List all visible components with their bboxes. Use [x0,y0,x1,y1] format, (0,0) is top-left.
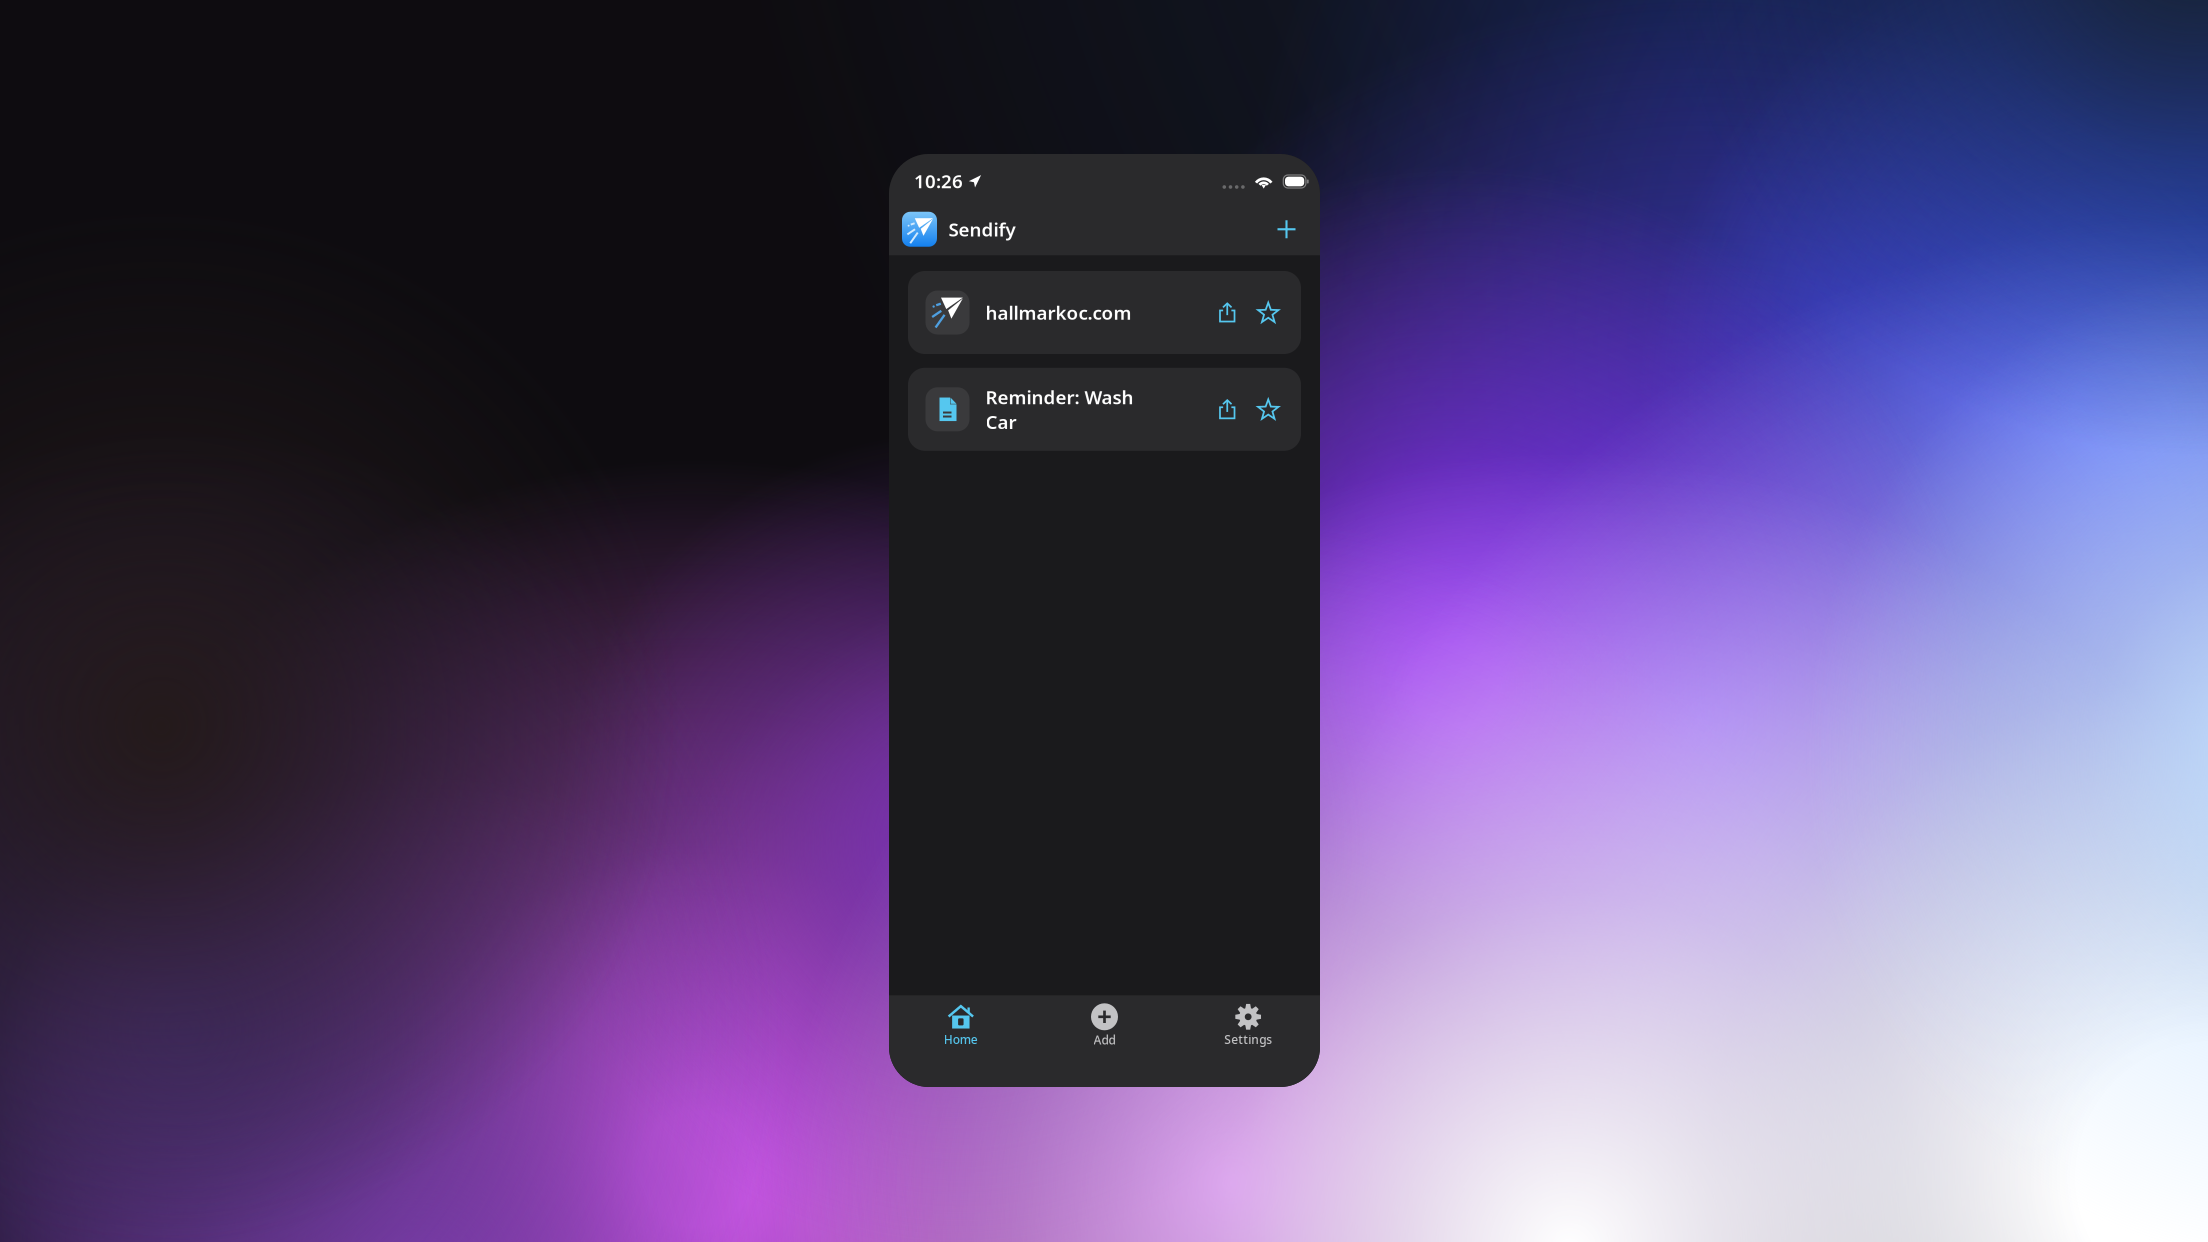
staticText: Add [1093,1032,1115,1048]
button[interactable]: Favourite [1249,392,1287,427]
button[interactable]: Home [889,1004,1033,1047]
staticText: 10:26 [914,169,963,193]
button[interactable]: Add [1270,213,1302,245]
staticText: Home [944,1031,978,1047]
staticText: Reminder: Wash Car [985,384,1133,434]
staticText: Sendify [948,217,1015,242]
button[interactable]: Favourite [1249,295,1287,330]
button[interactable]: Reminder: Wash Car [908,368,1301,451]
staticText: Settings [1224,1031,1272,1047]
button[interactable]: Share [1214,294,1249,331]
button[interactable]: Settings [1176,1004,1320,1047]
staticText: hallmarkoc.com [985,300,1131,325]
button[interactable]: Share [1214,391,1249,428]
button[interactable]: Add [1033,1003,1176,1048]
button[interactable]: hallmarkoc.com [908,271,1301,354]
